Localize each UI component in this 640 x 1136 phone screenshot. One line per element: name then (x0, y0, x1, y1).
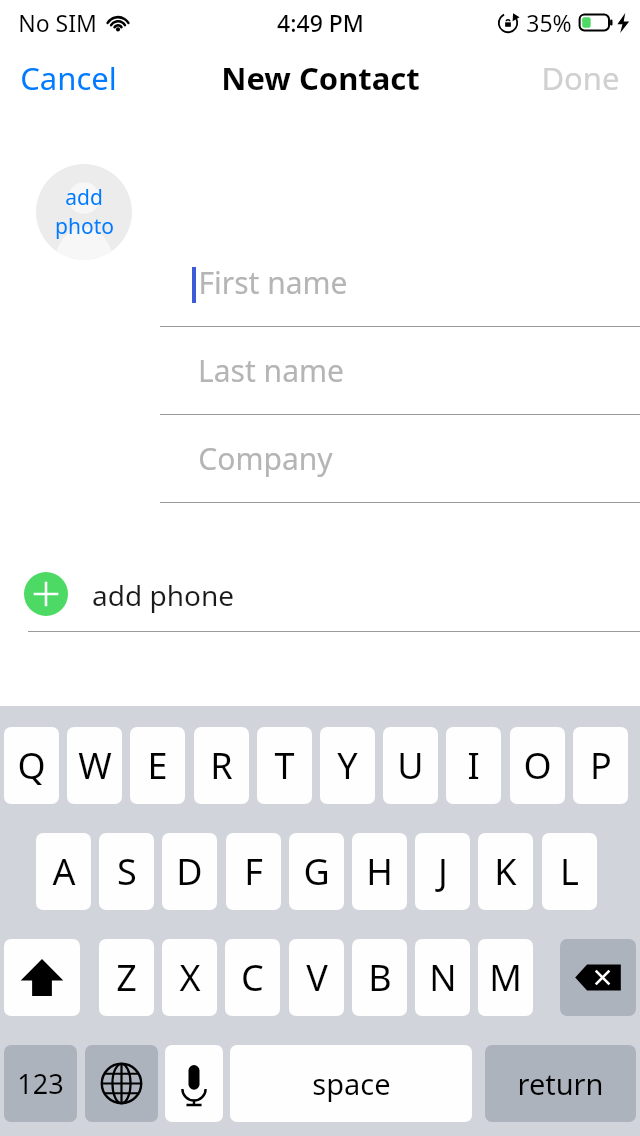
button[interactable]: Z (99, 939, 154, 1016)
staticText: 123 (17, 1065, 64, 1102)
button[interactable]: U (383, 727, 438, 804)
staticText: U (397, 741, 424, 790)
button[interactable]: Q (4, 727, 59, 804)
button[interactable]: S (99, 833, 154, 910)
staticText: O (523, 741, 552, 790)
button[interactable]: add phone (0, 552, 640, 638)
staticText: I (467, 741, 480, 790)
button[interactable]: Last name (160, 340, 640, 428)
button[interactable]: G (289, 833, 344, 910)
button[interactable]: Company (160, 428, 640, 516)
staticText: X (179, 953, 201, 1002)
staticText: A (52, 847, 76, 896)
staticText: Done (541, 57, 620, 99)
staticText: J (438, 847, 448, 896)
staticText: G (303, 847, 330, 896)
button[interactable]: Dictate (165, 1045, 223, 1122)
staticText: Cancel (20, 57, 117, 99)
button[interactable]: J (415, 833, 470, 910)
staticText: L (560, 847, 579, 896)
button[interactable]: N (415, 939, 470, 1016)
button[interactable]: Cancel (0, 47, 137, 109)
button[interactable]: Backspace (560, 939, 636, 1016)
button[interactable]: Y (320, 727, 375, 804)
staticText: return (517, 1064, 604, 1103)
button[interactable]: First name (160, 252, 640, 340)
staticText: H (366, 847, 393, 896)
staticText: Y (337, 741, 358, 790)
staticText: add email (92, 761, 222, 799)
staticText: V (306, 953, 328, 1002)
button[interactable]: V (289, 939, 344, 1016)
button[interactable]: Done (521, 47, 640, 109)
staticText: W (78, 741, 112, 790)
staticText: space (312, 1064, 391, 1103)
button[interactable]: F (226, 833, 281, 910)
button[interactable]: D (162, 833, 217, 910)
staticText: P (590, 741, 612, 790)
staticText: No SIM (18, 7, 97, 38)
button[interactable]: add email (0, 737, 640, 823)
staticText: Z (116, 953, 137, 1002)
staticText: S (117, 847, 137, 896)
button[interactable]: C (225, 939, 280, 1016)
staticText: 4:49 PM (277, 7, 364, 38)
button[interactable]: K (478, 833, 533, 910)
button[interactable]: R (194, 727, 249, 804)
button[interactable]: L (542, 833, 597, 910)
button[interactable]: 123 (4, 1045, 77, 1122)
button[interactable]: Shift (4, 939, 80, 1016)
staticText: Q (17, 741, 46, 790)
staticText: add phone (92, 576, 234, 614)
button[interactable]: space (230, 1045, 472, 1122)
staticText: photo (55, 212, 114, 241)
staticText: R (210, 741, 233, 790)
button[interactable]: H (352, 833, 407, 910)
staticText: M (489, 953, 522, 1002)
staticText: K (494, 847, 517, 896)
button[interactable]: T (257, 727, 312, 804)
button[interactable]: I (446, 727, 501, 804)
staticText: T (274, 741, 295, 790)
staticText: New Contact (221, 57, 420, 99)
button[interactable]: O (510, 727, 565, 804)
button[interactable]: E (130, 727, 185, 804)
button[interactable]: return (485, 1045, 636, 1122)
staticText: D (176, 847, 203, 896)
staticText: C (241, 953, 264, 1002)
staticText: B (368, 953, 392, 1002)
staticText: 35% (526, 7, 572, 38)
button[interactable]: A (36, 833, 91, 910)
button[interactable]: Switch keyboard (85, 1045, 158, 1122)
button[interactable]: B (352, 939, 407, 1016)
staticText: E (147, 741, 168, 790)
button[interactable]: Add photo (36, 164, 132, 260)
staticText: add (65, 183, 103, 212)
button[interactable]: X (162, 939, 217, 1016)
button[interactable]: M (478, 939, 533, 1016)
button[interactable]: W (67, 727, 122, 804)
staticText: Company (198, 438, 333, 479)
button[interactable]: P (573, 727, 628, 804)
staticText: F (244, 847, 263, 896)
staticText: Last name (198, 350, 344, 391)
staticText: First name (198, 262, 348, 303)
staticText: N (429, 953, 457, 1002)
